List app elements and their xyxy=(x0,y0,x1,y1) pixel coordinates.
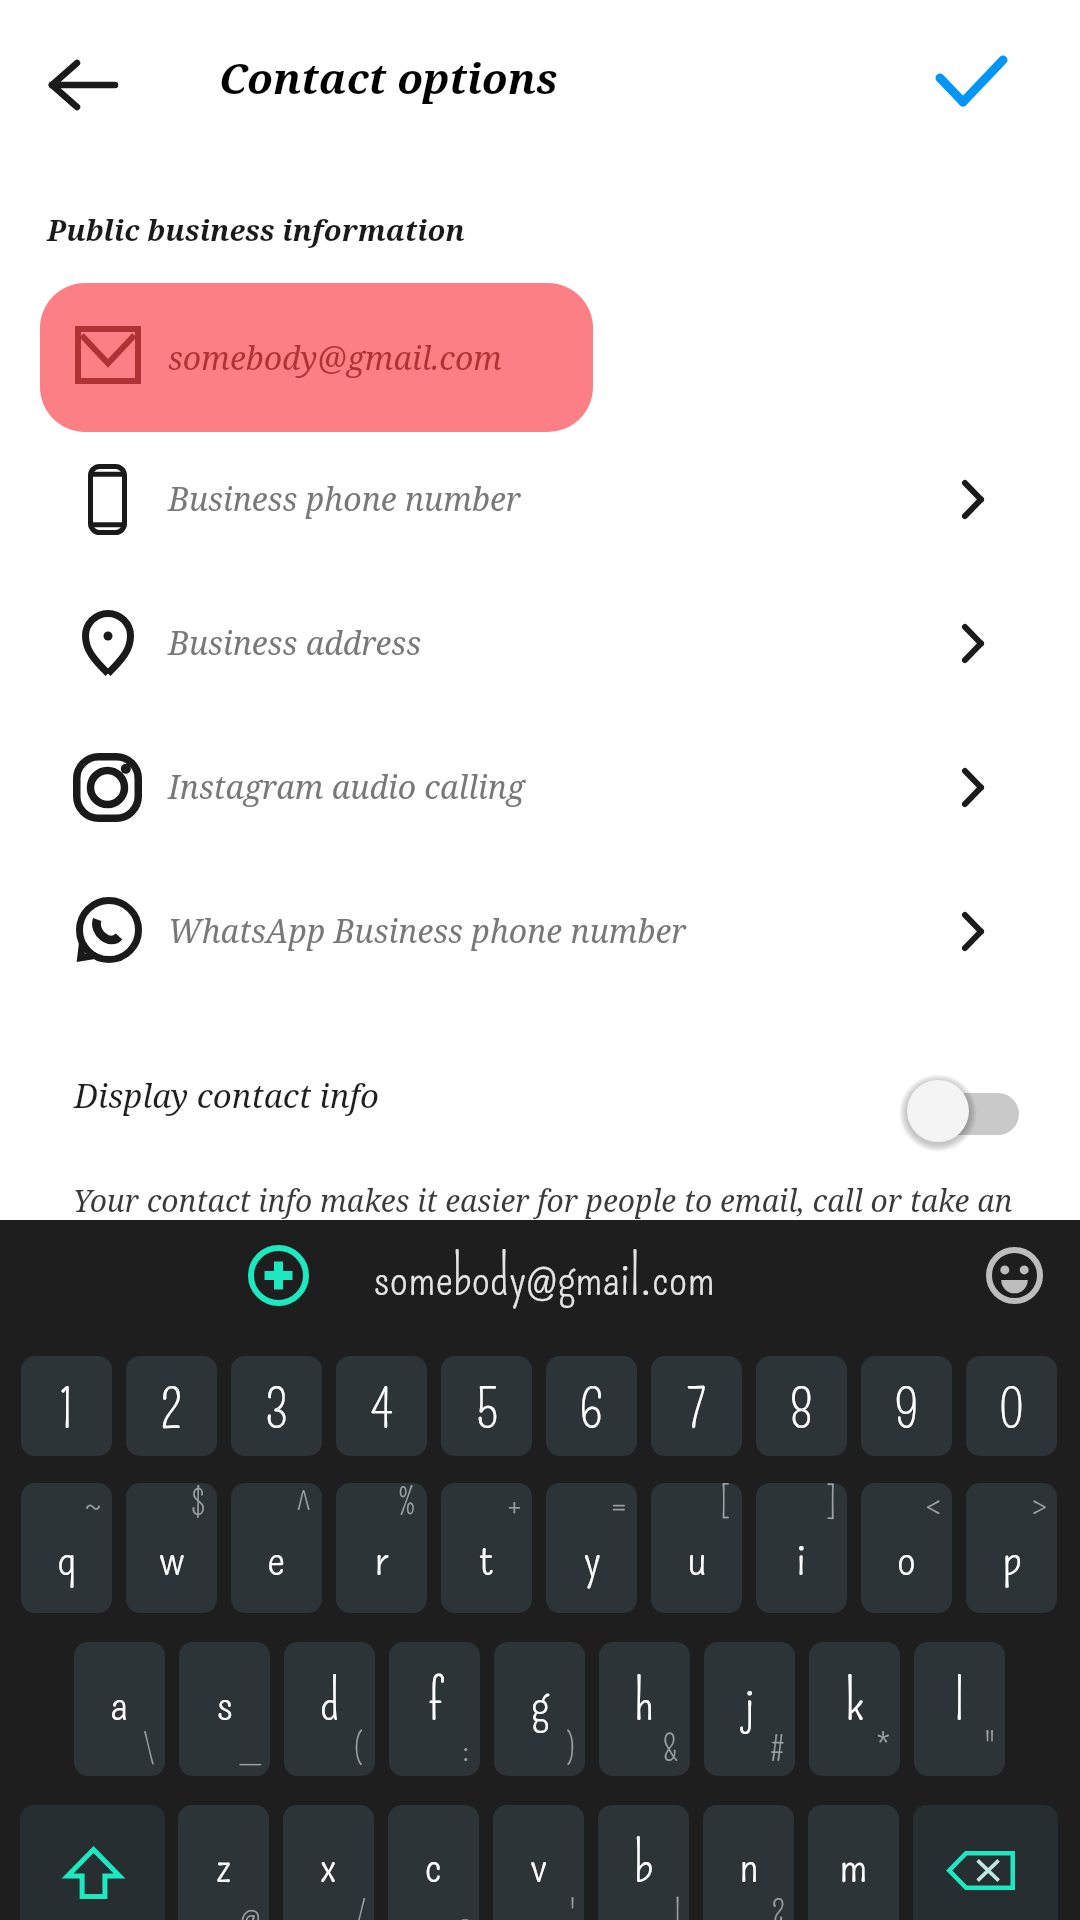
button[interactable]: Add to dictionary xyxy=(248,1245,309,1306)
staticText: ] xyxy=(825,1483,837,1524)
button[interactable]: 4 xyxy=(336,1356,427,1456)
staticText: q xyxy=(57,1524,77,1589)
button[interactable]: n xyxy=(703,1805,794,1920)
staticText: : xyxy=(462,1729,470,1770)
button[interactable]: x xyxy=(283,1805,374,1920)
staticText: | xyxy=(674,1896,681,1920)
staticText: % xyxy=(398,1483,417,1524)
staticText: x xyxy=(319,1831,338,1896)
button[interactable]: y xyxy=(546,1483,637,1613)
button[interactable]: r xyxy=(336,1483,427,1613)
staticText: u xyxy=(687,1524,707,1589)
button[interactable]: 2 xyxy=(126,1356,217,1456)
staticText: Contact options xyxy=(219,49,558,106)
staticText: i xyxy=(796,1524,807,1589)
button[interactable]: Instagram audio calling xyxy=(0,720,1080,854)
staticText: # xyxy=(770,1729,785,1770)
button[interactable]: u xyxy=(651,1483,742,1613)
button[interactable]: Back xyxy=(20,30,130,140)
button[interactable]: h xyxy=(599,1642,690,1776)
button[interactable]: somebody@gmail.com xyxy=(40,283,593,432)
staticText: < xyxy=(926,1483,942,1524)
staticText: + xyxy=(507,1483,522,1524)
staticText: r xyxy=(374,1524,389,1589)
staticText: g xyxy=(531,1669,549,1734)
button[interactable]: f xyxy=(389,1642,480,1776)
staticText: Business phone number xyxy=(168,477,521,521)
button[interactable]: a xyxy=(74,1642,165,1776)
button[interactable]: s xyxy=(179,1642,270,1776)
button[interactable]: g xyxy=(494,1642,585,1776)
button[interactable]: 9 xyxy=(861,1356,952,1456)
staticText: ^ xyxy=(296,1483,312,1524)
button[interactable]: j xyxy=(704,1642,795,1776)
staticText: [ xyxy=(720,1483,732,1524)
staticText: ' xyxy=(570,1896,576,1920)
button[interactable]: Business address xyxy=(0,576,1080,710)
button[interactable]: 8 xyxy=(756,1356,847,1456)
button[interactable]: b xyxy=(598,1805,689,1920)
button[interactable]: 0 xyxy=(966,1356,1057,1456)
staticText: ) xyxy=(565,1729,575,1770)
staticText: 5 xyxy=(475,1377,499,1442)
staticText: WhatsApp Business phone number xyxy=(168,909,687,953)
staticText: > xyxy=(1031,1483,1047,1524)
button[interactable]: Emoji xyxy=(986,1247,1043,1304)
staticText: t xyxy=(479,1524,494,1589)
staticText: d xyxy=(320,1669,340,1734)
button[interactable]: i xyxy=(756,1483,847,1613)
staticText: w xyxy=(159,1524,185,1589)
staticText: j xyxy=(744,1669,755,1734)
button[interactable]: k xyxy=(809,1642,900,1776)
staticText: m xyxy=(839,1831,868,1896)
staticText: 9 xyxy=(893,1377,920,1442)
button[interactable]: Business phone number xyxy=(0,432,1080,566)
staticText: 0 xyxy=(998,1377,1025,1442)
button[interactable]: v xyxy=(493,1805,584,1920)
button[interactable]: w xyxy=(126,1483,217,1613)
staticText: * xyxy=(876,1729,890,1770)
button[interactable]: 5 xyxy=(441,1356,532,1456)
button[interactable]: m xyxy=(808,1805,899,1920)
staticText: c xyxy=(424,1831,443,1896)
staticText: Business address xyxy=(168,621,422,665)
staticText: Display contact info xyxy=(74,1073,379,1118)
staticText: _ xyxy=(241,1729,260,1770)
button[interactable]: e xyxy=(231,1483,322,1613)
staticText: 8 xyxy=(789,1377,815,1442)
staticText: z xyxy=(215,1831,232,1896)
staticText: $ xyxy=(191,1483,207,1524)
staticText: s xyxy=(216,1669,234,1734)
staticText: h xyxy=(634,1669,655,1734)
button[interactable]: 6 xyxy=(546,1356,637,1456)
staticText: Instagram audio calling xyxy=(168,765,525,809)
button[interactable]: o xyxy=(861,1483,952,1613)
staticText: e xyxy=(267,1524,286,1589)
button[interactable]: WhatsApp Business phone number xyxy=(0,864,1080,998)
button[interactable]: d xyxy=(284,1642,375,1776)
button[interactable]: p xyxy=(966,1483,1057,1613)
staticText: ? xyxy=(771,1896,786,1920)
button[interactable]: t xyxy=(441,1483,532,1613)
button[interactable]: c xyxy=(388,1805,479,1920)
staticText: Public business information xyxy=(47,210,465,249)
button[interactable]: Backspace xyxy=(913,1805,1058,1920)
staticText: Your contact info makes it easier for pe… xyxy=(73,1180,1013,1221)
button[interactable]: Shift xyxy=(20,1805,165,1920)
button[interactable]: 3 xyxy=(231,1356,322,1456)
button[interactable]: 7 xyxy=(651,1356,742,1456)
staticText: \ xyxy=(143,1729,155,1770)
button[interactable]: l xyxy=(914,1642,1005,1776)
button[interactable]: Display contact info xyxy=(0,1033,1080,1158)
staticText: somebody@gmail.com xyxy=(168,336,502,380)
staticText: y xyxy=(583,1524,601,1589)
button[interactable]: 1 xyxy=(21,1356,112,1456)
staticText: p xyxy=(1002,1524,1022,1589)
button[interactable]: q xyxy=(21,1483,112,1613)
staticText: 6 xyxy=(578,1377,605,1442)
button[interactable]: Done xyxy=(925,30,1035,140)
staticText: " xyxy=(985,1729,995,1770)
button[interactable]: z xyxy=(178,1805,269,1920)
staticText: ( xyxy=(354,1729,365,1770)
